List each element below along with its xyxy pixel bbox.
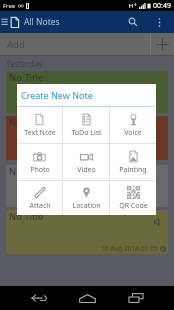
button[interactable]: ToDo List (63, 107, 109, 143)
button[interactable]: Painting (110, 144, 156, 180)
staticText: Location (72, 201, 101, 211)
staticText: Video (77, 165, 96, 175)
staticText: H (129, 2, 134, 9)
button[interactable]: Location (63, 181, 109, 215)
button[interactable]: Text Note (17, 107, 62, 143)
button[interactable]: No Title (6, 116, 168, 160)
button[interactable]: Attach (17, 181, 62, 215)
button[interactable]: Voice (110, 107, 156, 143)
button[interactable]: No Title (6, 165, 168, 207)
staticText: Attach (29, 201, 51, 211)
button[interactable]: Photo (17, 144, 62, 180)
staticText: All Notes (24, 16, 60, 28)
staticText: Yesterday (6, 58, 43, 69)
button[interactable]: Open navigation drawer (0, 11, 21, 33)
button[interactable]: Recent apps (112, 286, 159, 310)
staticText: No Title (9, 116, 44, 129)
staticText: + (134, 2, 137, 8)
staticText: No Title (9, 165, 44, 178)
staticText: Painting (119, 165, 147, 175)
button[interactable]: Home (64, 286, 111, 310)
button[interactable]: Add (0, 33, 174, 55)
button[interactable]: Search (119, 11, 147, 33)
staticText: Free (3, 2, 16, 10)
button[interactable]: Back (15, 286, 62, 310)
staticText: No Title (9, 71, 44, 84)
staticText: Create New Note (21, 89, 93, 101)
staticText: No Title (9, 210, 44, 223)
staticText: Photo (30, 165, 50, 175)
button[interactable]: No Title (6, 210, 168, 254)
button[interactable]: Video (63, 144, 109, 180)
button[interactable]: More options (147, 11, 171, 33)
staticText: Add (7, 38, 25, 51)
staticText: ToDo List (71, 128, 102, 138)
button[interactable]: Add note (151, 33, 174, 55)
button[interactable]: QR Code (110, 181, 156, 215)
staticText: 10 Aug 2014-01 05 (101, 244, 158, 253)
staticText: Voice (124, 128, 142, 138)
button[interactable]: No Title (6, 71, 168, 113)
staticText: QR Code (119, 201, 148, 211)
staticText: Text Note (24, 128, 56, 138)
staticText: 00:49 (153, 1, 171, 11)
